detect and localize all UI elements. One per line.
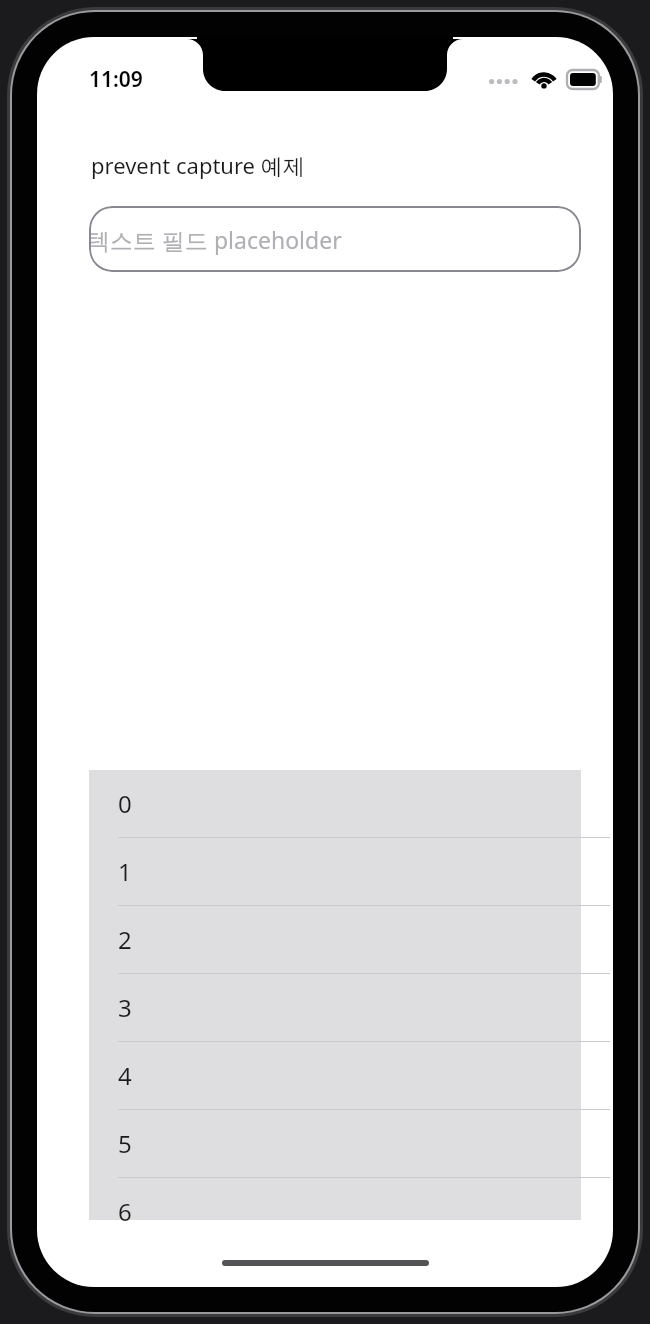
button[interactable]: 0 xyxy=(89,770,581,838)
button[interactable]: 텍스트 필드 placeholder xyxy=(89,206,581,272)
staticText: 3 xyxy=(118,991,132,1024)
button[interactable]: 5 xyxy=(89,1110,581,1178)
staticText: 11:09 xyxy=(89,65,143,94)
staticText: 5 xyxy=(118,1127,132,1160)
staticText: 6 xyxy=(118,1195,132,1228)
other: Home indicator xyxy=(222,1260,429,1266)
staticText: 텍스트 필드 placeholder xyxy=(89,224,342,255)
staticText: 4 xyxy=(118,1059,132,1092)
button[interactable]: 6 xyxy=(89,1178,581,1220)
staticText: prevent capture 예제 xyxy=(91,150,305,180)
staticText: 0 xyxy=(118,787,132,820)
staticText: 1 xyxy=(118,855,132,888)
staticText: 2 xyxy=(118,923,132,956)
button[interactable]: 3 xyxy=(89,974,581,1042)
button[interactable]: 1 xyxy=(89,838,581,906)
button[interactable]: 4 xyxy=(89,1042,581,1110)
button[interactable]: 2 xyxy=(89,906,581,974)
